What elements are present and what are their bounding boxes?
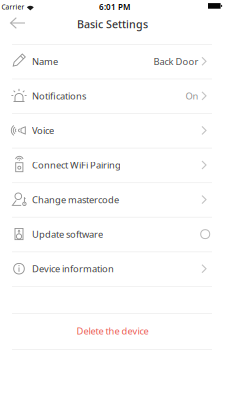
staticText: Carrier bbox=[1, 2, 24, 11]
button[interactable]: Connect WiFi Pairing bbox=[0, 148, 225, 182]
button[interactable]: Voice bbox=[0, 113, 225, 148]
staticText: Back Door bbox=[153, 55, 198, 67]
staticText: Voice bbox=[32, 124, 54, 137]
staticText: Update software bbox=[32, 228, 103, 240]
button[interactable]: Delete the device bbox=[0, 313, 225, 349]
staticText: 6:01 PM bbox=[99, 1, 130, 12]
staticText: Notifications bbox=[32, 90, 86, 102]
button[interactable]: Back bbox=[7, 11, 35, 34]
staticText: Name bbox=[32, 55, 58, 67]
button[interactable]: Name bbox=[0, 44, 225, 79]
staticText: Delete the device bbox=[76, 325, 148, 337]
button[interactable]: Update software bbox=[0, 217, 225, 251]
button[interactable]: Device information bbox=[0, 251, 225, 286]
staticText: On bbox=[185, 90, 198, 102]
staticText: Change mastercode bbox=[32, 193, 119, 206]
staticText: Device information bbox=[32, 262, 114, 275]
button[interactable]: Notifications bbox=[0, 79, 225, 113]
button[interactable]: Change mastercode bbox=[0, 182, 225, 217]
staticText: Connect WiFi Pairing bbox=[32, 159, 121, 171]
staticText: Basic Settings bbox=[77, 17, 148, 31]
